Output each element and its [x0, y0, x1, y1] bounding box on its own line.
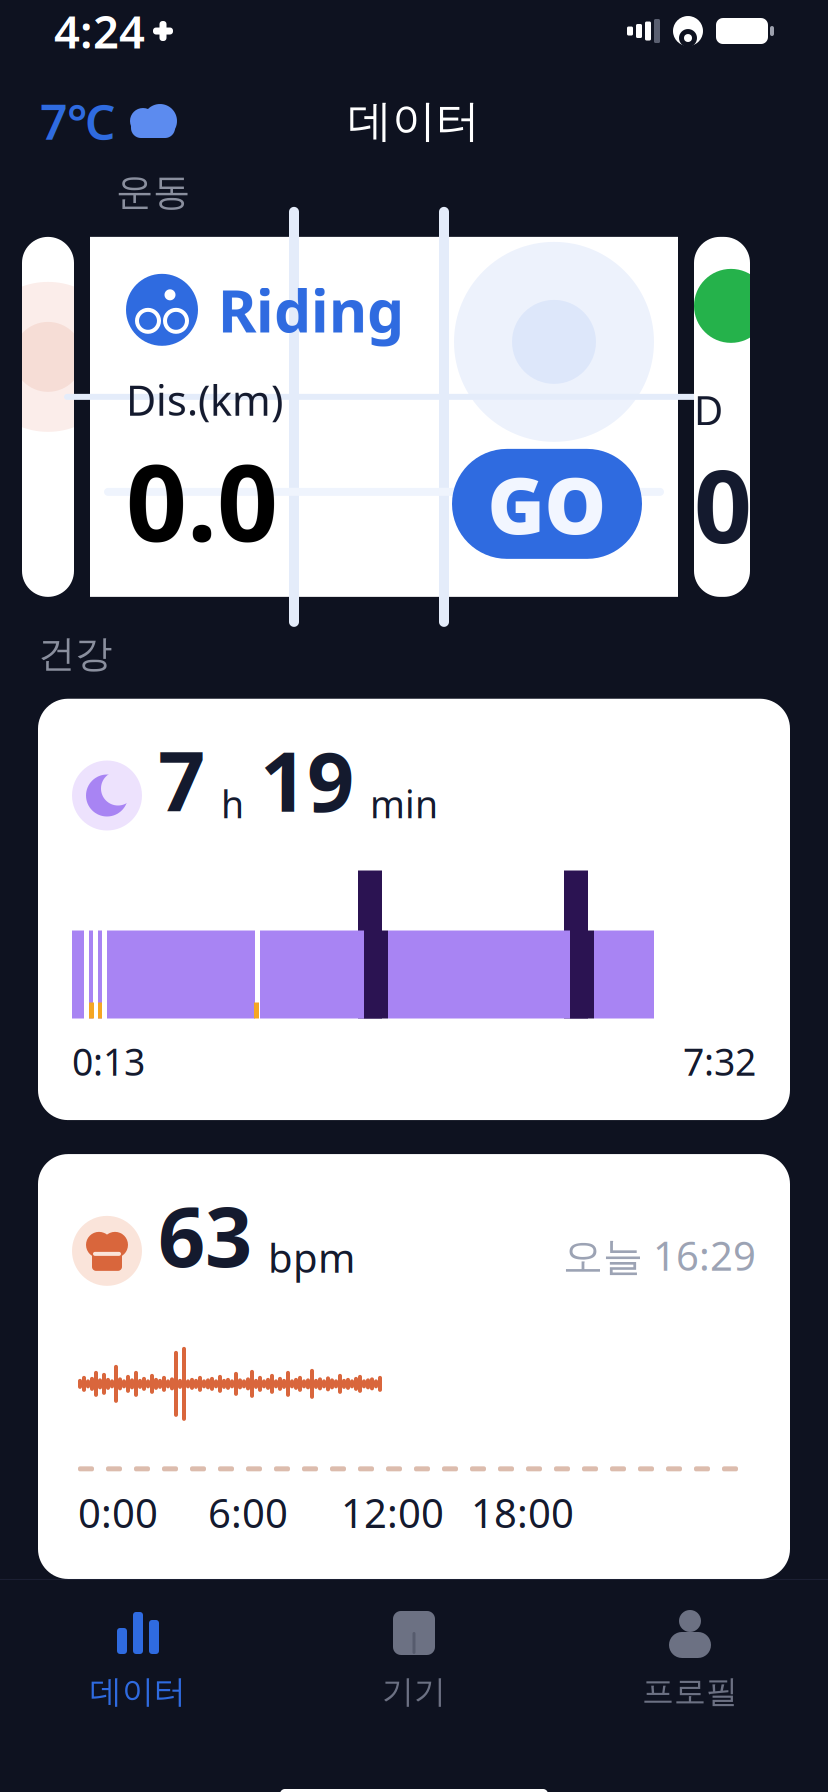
staticText: 건강	[38, 631, 112, 677]
staticText: 0:13	[72, 1036, 145, 1086]
staticText: Dis.(km)	[126, 372, 283, 427]
staticText: GO	[487, 452, 606, 555]
button[interactable]: Start riding	[452, 449, 642, 559]
staticText: 12:00	[341, 1486, 444, 1539]
button[interactable]: 프로필	[552, 1606, 828, 1711]
staticText: 프로필	[642, 1672, 738, 1711]
staticText: 오늘 16:29	[563, 1229, 756, 1282]
staticText: 7	[158, 725, 205, 834]
staticText: 운동	[116, 169, 190, 215]
staticText: D	[694, 383, 723, 436]
staticText: 19	[260, 725, 354, 834]
staticText: 7:32	[683, 1036, 756, 1086]
staticText: bpm	[268, 1231, 355, 1284]
staticText: 18:00	[471, 1486, 574, 1539]
button[interactable]: Heart rate 63 bpm	[38, 1154, 790, 1579]
staticText: 데이터	[348, 94, 480, 148]
button[interactable]: Sleep 7 hours 19 minutes	[38, 699, 790, 1120]
staticText: 63	[158, 1180, 252, 1290]
staticText: 6:00	[208, 1486, 288, 1539]
staticText: 7℃	[40, 89, 115, 153]
staticText: min	[370, 779, 438, 828]
button[interactable]: 데이터	[0, 1606, 276, 1711]
staticText: 데이터	[90, 1672, 186, 1711]
button[interactable]: Weather	[40, 89, 179, 153]
staticText: 4:24	[54, 1, 145, 61]
staticText: 0	[694, 436, 752, 571]
staticText: 기기	[382, 1672, 446, 1711]
staticText: 0:00	[78, 1486, 158, 1539]
button[interactable]: 기기	[276, 1606, 552, 1711]
staticText: 0.0	[126, 429, 278, 571]
button[interactable]: Riding workout	[64, 207, 704, 627]
staticText: h	[221, 779, 244, 828]
staticText: Riding	[218, 271, 404, 349]
